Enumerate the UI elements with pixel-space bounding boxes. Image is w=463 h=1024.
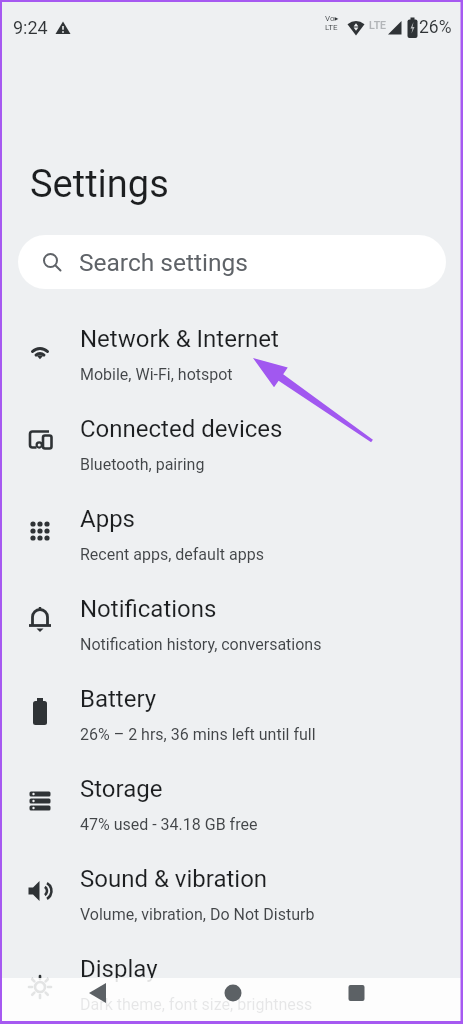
staticText: Settings (30, 162, 169, 207)
button[interactable]: Search settings (18, 235, 446, 289)
button[interactable]: Connected devices (0, 399, 463, 489)
staticText: Dark theme, font size, brightness (80, 995, 313, 1014)
staticText: Recent apps, default apps (80, 545, 264, 564)
button[interactable]: Sound & vibration (0, 849, 463, 939)
staticText: Apps (80, 505, 135, 533)
staticText: Search settings (79, 248, 248, 277)
staticText: LTE (369, 19, 386, 31)
button[interactable]: Storage (0, 759, 463, 849)
staticText: Volume, vibration, Do Not Disturb (80, 905, 315, 924)
button[interactable]: Apps (0, 489, 463, 579)
button[interactable] (0, 978, 155, 1021)
button[interactable]: Battery (0, 669, 463, 759)
staticText: Storage (80, 775, 163, 803)
button[interactable]: Display (0, 939, 463, 1024)
staticText: Bluetooth, pairing (80, 455, 205, 474)
staticText: Battery (80, 685, 157, 713)
staticText: Notifications (80, 595, 217, 623)
staticText: Notification history, conversations (80, 635, 322, 654)
button[interactable] (309, 978, 463, 1021)
button[interactable]: Notifications (0, 579, 463, 669)
staticText: Display (80, 955, 158, 983)
staticText: Sound & vibration (80, 865, 268, 893)
button[interactable]: Network & Internet (0, 309, 463, 399)
staticText: Vo▸ LTE (325, 14, 339, 32)
staticText: Connected devices (80, 415, 283, 443)
staticText: 26% – 2 hrs, 36 mins left until full (80, 725, 316, 744)
staticText: 26% (419, 17, 452, 38)
staticText: 9:24 (13, 17, 48, 38)
staticText: Network & Internet (80, 325, 279, 353)
staticText: Mobile, Wi-Fi, hotspot (80, 365, 233, 384)
staticText: 47% used - 34.18 GB free (80, 815, 258, 834)
button[interactable] (155, 978, 309, 1021)
